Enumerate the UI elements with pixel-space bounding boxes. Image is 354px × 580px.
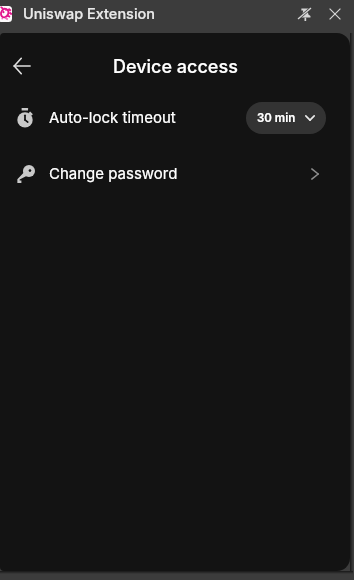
staticText: Auto-lock timeout [49, 108, 176, 126]
button[interactable]: Change password [0, 156, 350, 192]
staticText: Uniswap Extension [23, 5, 156, 23]
staticText: Change password [49, 164, 178, 182]
button[interactable]: Auto-lock timeout [0, 98, 350, 138]
button[interactable]: 30 min [246, 102, 326, 134]
button[interactable]: Back [2, 46, 42, 86]
button[interactable]: Close [321, 0, 349, 28]
button[interactable]: Unpin extension [290, 0, 318, 28]
staticText: Device access [113, 56, 238, 78]
staticText: 30 min [257, 111, 296, 125]
